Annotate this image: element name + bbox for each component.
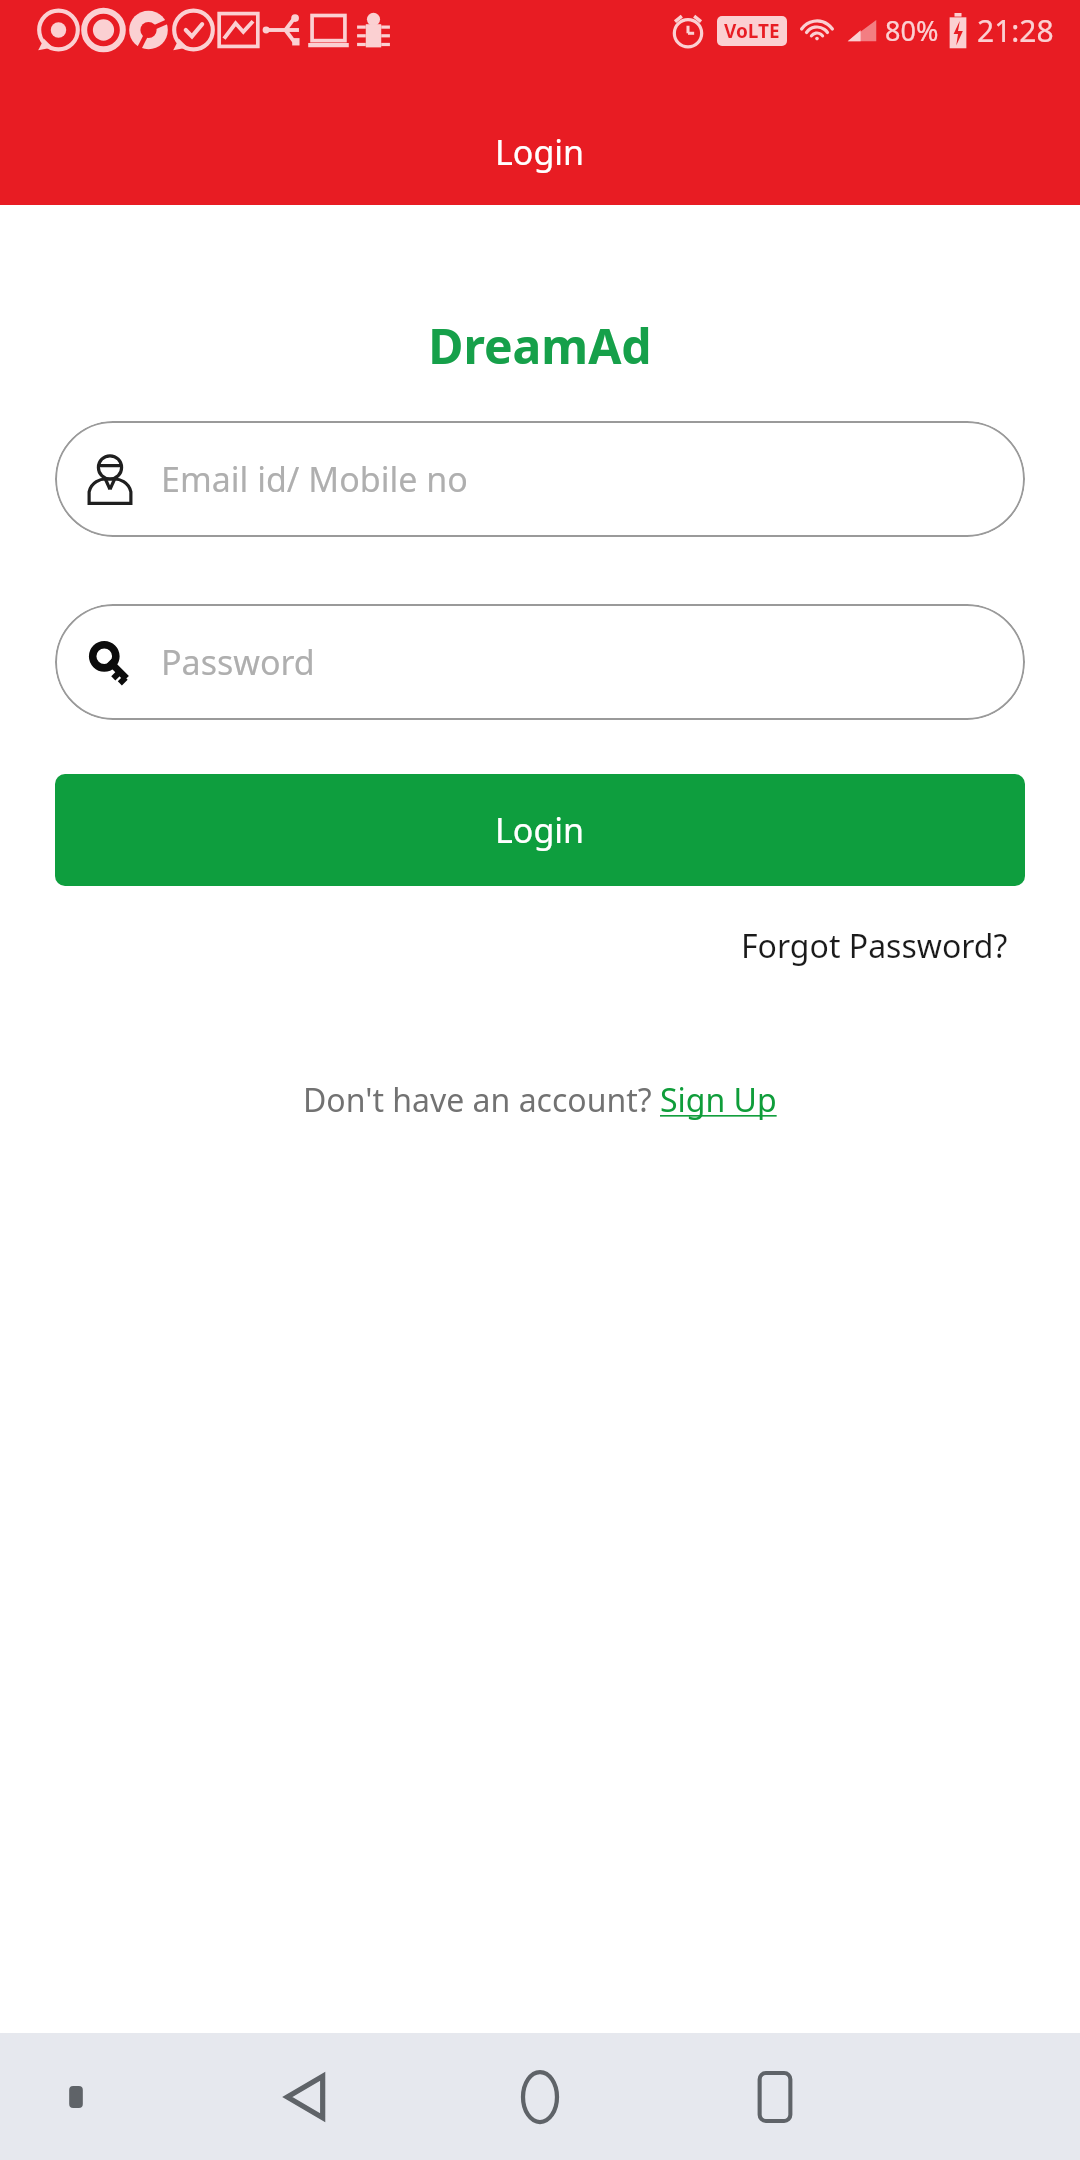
staticText: Email id/ Mobile no — [161, 456, 468, 502]
button[interactable]: Back — [250, 2042, 360, 2152]
staticText: VoLTE — [724, 18, 780, 44]
staticText: Forgot Password? — [741, 924, 1008, 968]
button[interactable]: Home — [485, 2042, 595, 2152]
staticText: Login — [495, 129, 585, 175]
staticText: Login — [495, 807, 585, 853]
button[interactable]: Forgot Password? — [741, 924, 1008, 968]
button[interactable]: Login — [55, 774, 1025, 886]
staticText: Sign Up — [660, 1078, 777, 1122]
staticText: DreamAd — [0, 313, 1080, 378]
button[interactable]: Password — [55, 604, 1025, 720]
staticText: Don't have an account? — [303, 1078, 660, 1122]
button[interactable]: Email id/ Mobile no — [55, 421, 1025, 537]
button[interactable]: Sign Up — [660, 1078, 777, 1122]
staticText: 80% — [885, 12, 939, 49]
button[interactable]: Menu dot — [48, 2069, 104, 2125]
staticText: Password — [161, 639, 315, 685]
staticText: 21:28 — [977, 10, 1054, 51]
button[interactable]: Recent apps — [720, 2042, 830, 2152]
